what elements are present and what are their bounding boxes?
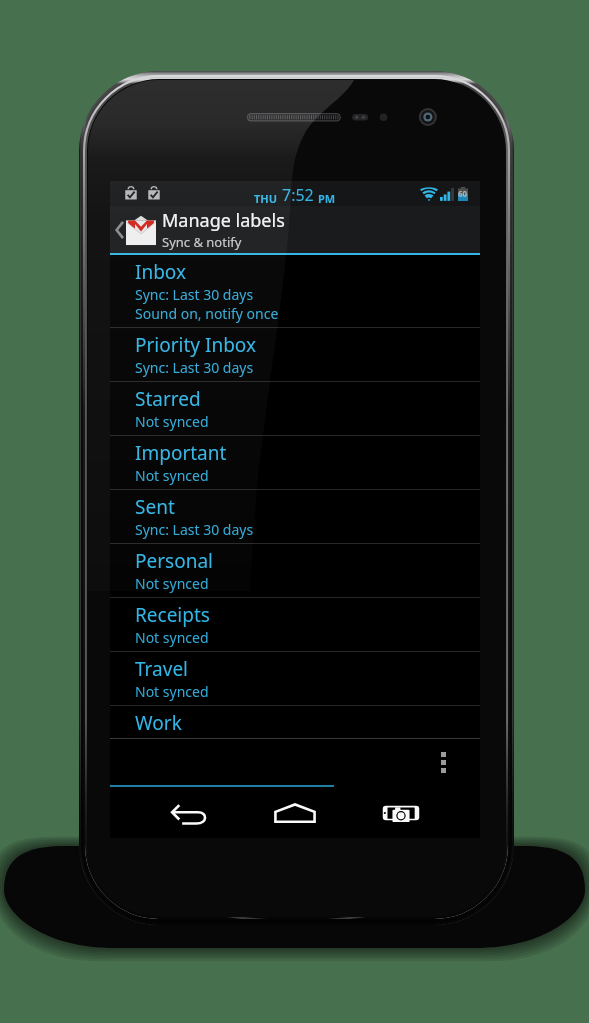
staticText: Important — [135, 440, 227, 466]
staticText: Not synced — [135, 466, 209, 485]
button[interactable]: Receipts — [110, 598, 480, 651]
staticText: Sync: Last 30 days — [135, 520, 254, 539]
staticText: Travel — [135, 656, 189, 682]
button[interactable]: Travel — [110, 652, 480, 705]
button[interactable]: Work — [110, 706, 480, 738]
staticText: Sync: Last 30 days — [135, 358, 254, 377]
staticText: Receipts — [135, 602, 210, 628]
staticText: PM — [318, 191, 336, 206]
button[interactable]: Important — [110, 436, 480, 489]
staticText: Sync & notify — [162, 233, 242, 251]
staticText: Personal — [135, 548, 213, 574]
button[interactable]: Inbox — [110, 255, 480, 327]
staticText: Inbox — [135, 259, 187, 285]
staticText: Sync: Last 30 days — [135, 285, 254, 304]
button[interactable]: More options — [430, 747, 456, 777]
staticText: Priority Inbox — [135, 332, 257, 358]
staticText: Not synced — [135, 682, 209, 701]
button[interactable]: Home — [259, 787, 331, 838]
button[interactable]: Personal — [110, 544, 480, 597]
button[interactable]: Sent — [110, 490, 480, 543]
staticText: 7:52 — [282, 184, 314, 206]
staticText: Work — [135, 710, 182, 734]
button[interactable]: Starred — [110, 382, 480, 435]
button[interactable]: Manage labels — [110, 206, 480, 253]
staticText: Sound on, notify once — [135, 304, 279, 323]
staticText: Not synced — [135, 574, 209, 593]
staticText: Not synced — [135, 412, 209, 431]
staticText: Starred — [135, 386, 201, 412]
staticText: Sent — [135, 494, 175, 520]
button[interactable]: Back — [153, 787, 225, 838]
staticText: 60 — [458, 188, 468, 199]
button[interactable]: Camera — [365, 787, 437, 838]
staticText: THU — [254, 191, 278, 206]
staticText: Manage labels — [162, 208, 285, 233]
staticText: Not synced — [135, 628, 209, 647]
button[interactable]: Priority Inbox — [110, 328, 480, 381]
